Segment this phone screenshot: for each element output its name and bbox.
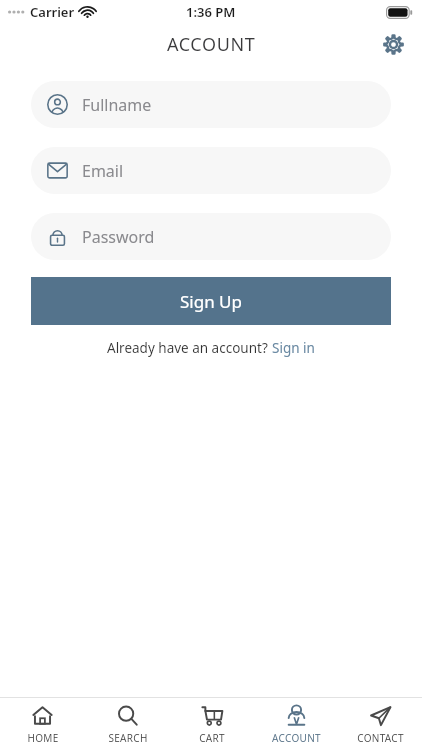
staticText: 1:36 PM	[186, 3, 236, 21]
button[interactable]: HOME	[0, 704, 85, 745]
button[interactable]: Settings	[378, 29, 408, 59]
button[interactable]: Fullname	[31, 81, 391, 128]
staticText: ACCOUNT	[167, 32, 256, 57]
button[interactable]: ACCOUNT	[254, 704, 338, 745]
staticText: HOME	[27, 731, 59, 745]
button[interactable]: Email	[31, 147, 391, 194]
staticText: Password	[82, 226, 155, 248]
button[interactable]: Sign in	[272, 339, 315, 357]
button[interactable]: Password	[31, 213, 391, 260]
staticText: ACCOUNT	[272, 731, 321, 745]
staticText: Carrier	[30, 3, 75, 21]
staticText: Sign Up	[180, 290, 242, 313]
staticText: CART	[199, 731, 225, 745]
staticText: Already have an account?	[107, 339, 272, 357]
staticText: Fullname	[82, 94, 152, 116]
staticText: CONTACT	[357, 731, 404, 745]
staticText: Sign in	[272, 339, 315, 357]
staticText: SEARCH	[108, 731, 148, 745]
staticText: Email	[82, 160, 124, 182]
button[interactable]: SEARCH	[85, 704, 170, 745]
button[interactable]: CART	[170, 704, 254, 745]
button[interactable]: Sign Up	[31, 277, 391, 325]
button[interactable]: CONTACT	[338, 704, 422, 745]
